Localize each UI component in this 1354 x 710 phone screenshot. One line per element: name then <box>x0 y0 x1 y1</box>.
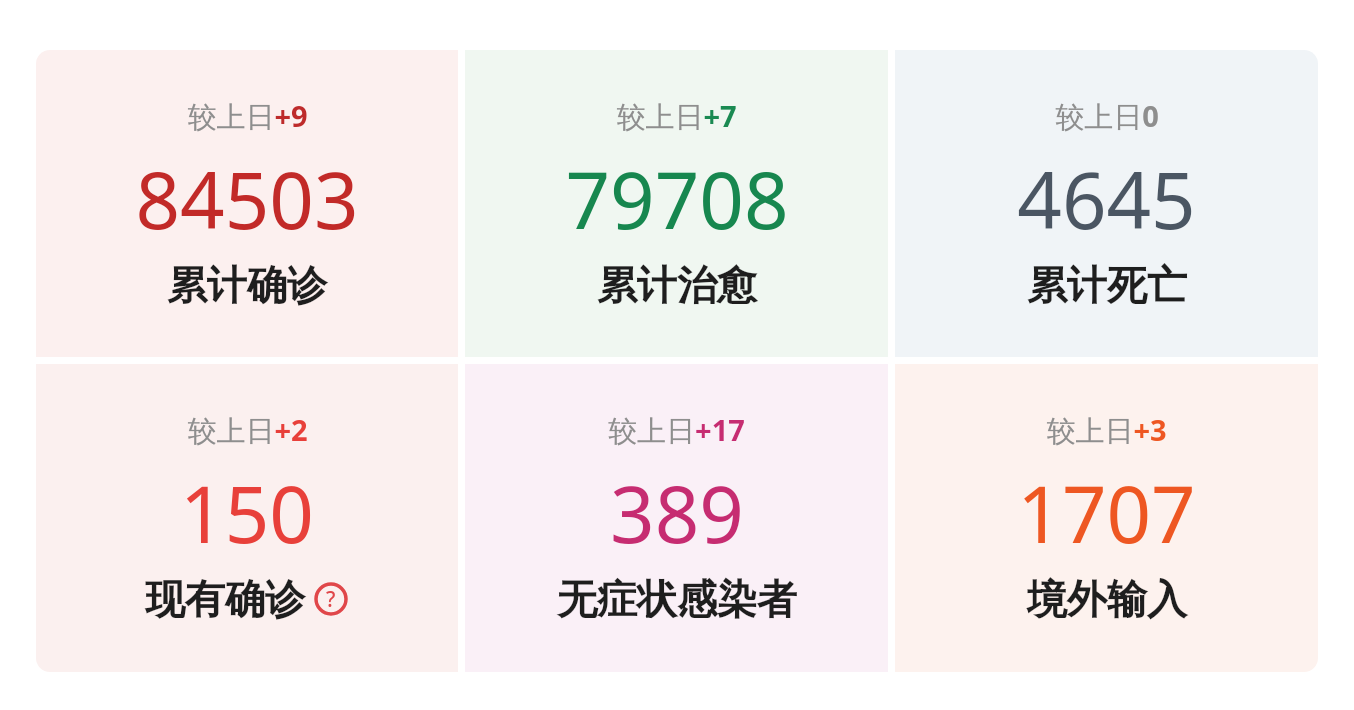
button[interactable]: 较上日+9 <box>36 50 458 357</box>
button[interactable]: 较上日0 <box>895 50 1318 357</box>
staticText: 无症状感染者 <box>557 574 797 624</box>
staticText: 现有确诊 <box>145 574 305 624</box>
staticText: 较上日0 <box>1055 96 1159 136</box>
staticText: 150 <box>180 460 314 566</box>
staticText: 84503 <box>135 146 359 252</box>
staticText: 4645 <box>1017 146 1196 252</box>
staticText: 较上日+7 <box>616 96 737 136</box>
button[interactable]: 较上日+3 <box>895 364 1318 672</box>
staticText: 较上日+17 <box>608 410 745 450</box>
button[interactable]: 较上日+2 <box>36 364 458 672</box>
button[interactable]: 帮助说明 Help <box>313 581 349 617</box>
staticText: ? <box>326 585 336 614</box>
staticText: 境外输入 <box>1027 574 1187 624</box>
staticText: 较上日+3 <box>1046 410 1167 450</box>
staticText: 较上日+2 <box>187 410 308 450</box>
staticText: 79708 <box>565 146 789 252</box>
staticText: 累计治愈 <box>597 260 757 310</box>
button[interactable]: 较上日+17 <box>465 364 888 672</box>
staticText: 389 <box>610 460 744 566</box>
staticText: 较上日+9 <box>187 96 308 136</box>
staticText: 累计确诊 <box>167 260 327 310</box>
button[interactable]: 较上日+7 <box>465 50 888 357</box>
staticText: 1707 <box>1017 460 1196 566</box>
staticText: 累计死亡 <box>1027 260 1187 310</box>
